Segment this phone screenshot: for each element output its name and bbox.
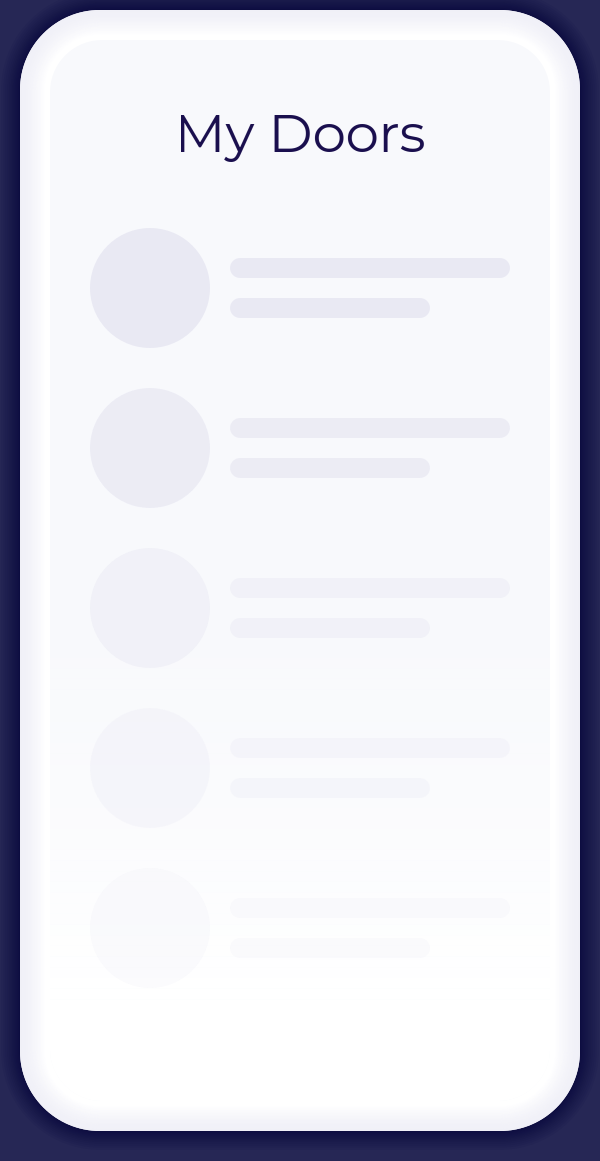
staticText: My Doors bbox=[174, 100, 425, 165]
button[interactable]: Loading door bbox=[90, 228, 510, 348]
button[interactable]: My Doors bbox=[50, 98, 550, 168]
button[interactable]: Loading door bbox=[90, 708, 510, 828]
button[interactable]: Loading door bbox=[90, 548, 510, 668]
button[interactable]: Loading door bbox=[90, 388, 510, 508]
